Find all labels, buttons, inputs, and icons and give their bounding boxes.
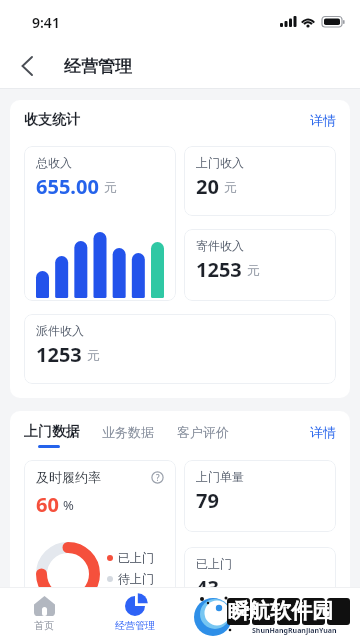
staticText: 元 xyxy=(87,347,100,363)
staticText: 元 xyxy=(104,179,117,195)
staticText: ? xyxy=(156,472,160,483)
button[interactable]: 已上门 xyxy=(184,547,336,619)
staticText: % xyxy=(63,496,74,514)
button[interactable]: 总收入 xyxy=(24,146,176,301)
staticText: 上门单量 xyxy=(196,469,244,484)
button[interactable]: 派件收入 xyxy=(24,314,336,384)
staticText: 总收入 xyxy=(36,155,72,170)
button[interactable]: 经营管理 xyxy=(88,587,182,640)
button[interactable]: 及时履约率 xyxy=(24,460,176,638)
staticText: 20 xyxy=(196,173,219,200)
staticText: 经营管理 xyxy=(64,56,132,77)
staticText: 79 xyxy=(196,487,219,514)
staticText: 655.00 xyxy=(36,173,99,200)
staticText: 待上门 xyxy=(118,571,154,586)
staticText: 元 xyxy=(224,179,237,195)
staticText: 已上门 xyxy=(118,550,154,565)
button[interactable]: 详情 xyxy=(310,112,336,128)
button[interactable] xyxy=(10,50,42,82)
button[interactable]: 上门单量 xyxy=(184,460,336,532)
button[interactable]: 详情 xyxy=(310,424,336,447)
button[interactable]: 寄件收入 xyxy=(184,229,336,301)
staticText: 寄件收入 xyxy=(196,238,244,253)
staticText: 及时履约率 xyxy=(36,469,101,485)
staticText: 上门收入 xyxy=(196,155,244,170)
button[interactable]: 首页 xyxy=(0,587,88,640)
button[interactable]: 业务数据 xyxy=(102,424,154,447)
button[interactable]: 上门数据 xyxy=(24,423,80,448)
staticText: 经营管理 xyxy=(115,619,155,632)
staticText: 1253 xyxy=(36,341,82,368)
staticText: 9:41 xyxy=(32,13,60,32)
staticText: 43 xyxy=(196,574,219,601)
staticText: 60 xyxy=(36,491,59,518)
staticText: 已上门 xyxy=(196,556,232,571)
button[interactable]: 上门收入 xyxy=(184,146,336,216)
staticText: 元 xyxy=(247,262,260,278)
staticText: 派件收入 xyxy=(36,323,84,338)
staticText: 上门数据 xyxy=(24,423,80,441)
staticText: 1253 xyxy=(196,256,242,283)
staticText: 收支统计 xyxy=(24,111,80,129)
button[interactable]: 客户评价 xyxy=(177,424,229,447)
staticText: ShunHangRuanJianYuan xyxy=(252,626,337,636)
staticText: 首页 xyxy=(34,619,54,632)
staticText: 瞬航软件园 xyxy=(228,598,333,624)
